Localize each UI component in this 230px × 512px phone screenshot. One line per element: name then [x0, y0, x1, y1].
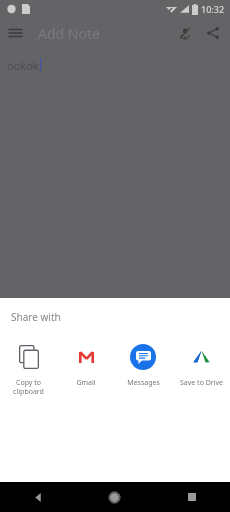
staticText: Save to Drive — [180, 378, 223, 388]
staticText: Copy to clipboard — [13, 378, 44, 396]
button[interactable]: Menu — [0, 18, 30, 48]
button[interactable]: Microphone off — [170, 18, 200, 48]
staticText: ookok — [7, 58, 39, 73]
button[interactable]: Messages — [114, 340, 172, 390]
staticText: Gmail — [76, 378, 96, 388]
staticText: Share with — [11, 310, 61, 324]
button[interactable]: Back — [0, 482, 76, 512]
button[interactable]: Save to Drive — [172, 340, 230, 390]
button[interactable]: Recents — [153, 482, 230, 512]
staticText: Add Note — [38, 24, 100, 43]
staticText: 10:32 — [201, 3, 225, 15]
staticText: Messages — [127, 378, 160, 388]
button[interactable]: Gmail — [57, 340, 114, 390]
button[interactable]: Home — [76, 482, 153, 512]
button[interactable]: Copy to clipboard — [0, 340, 57, 398]
button[interactable]: Share — [200, 18, 226, 48]
